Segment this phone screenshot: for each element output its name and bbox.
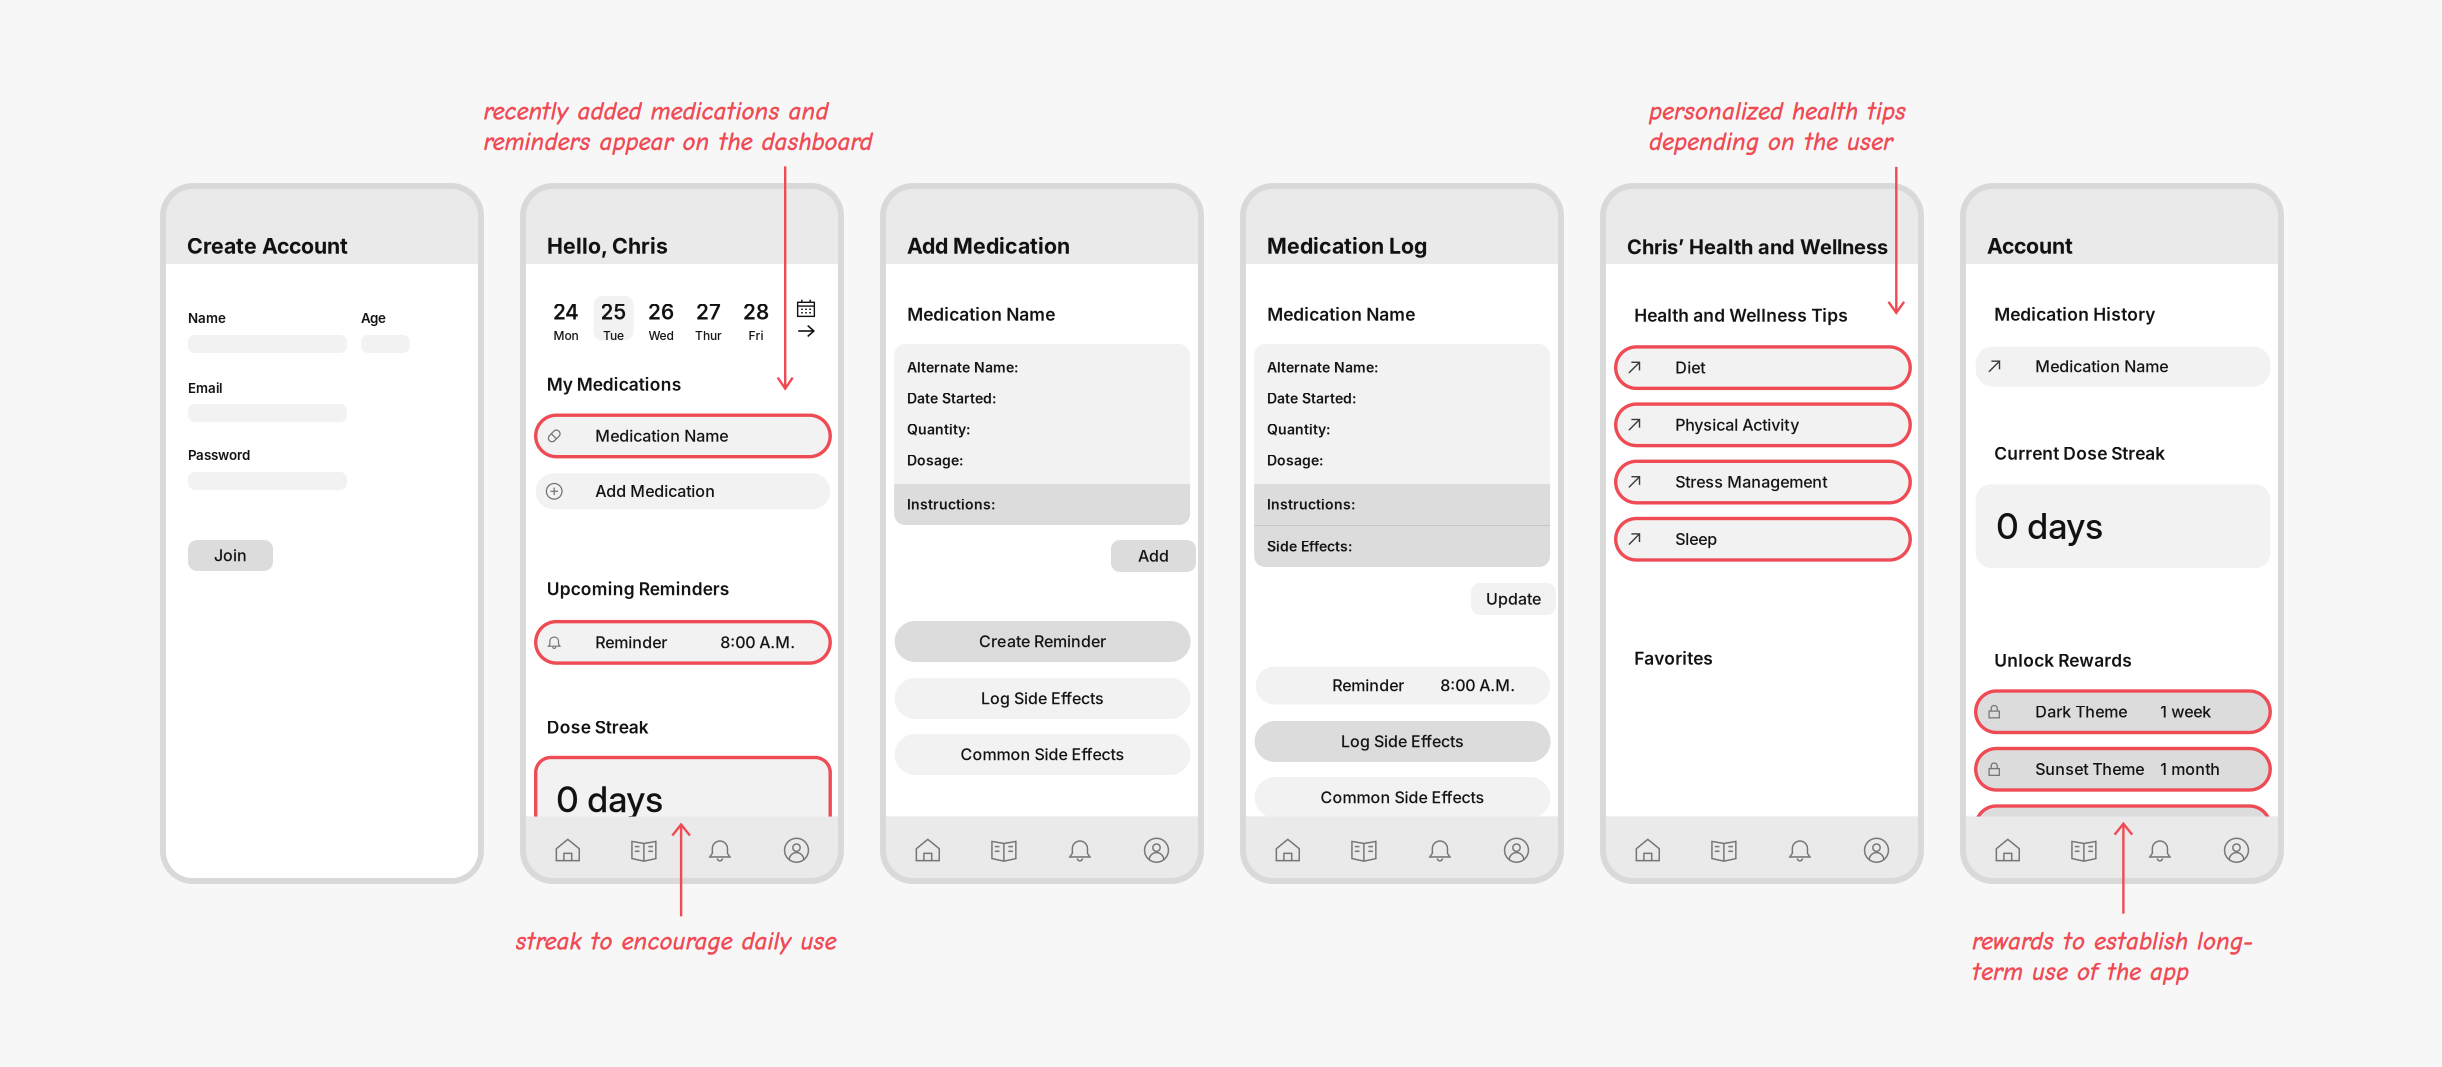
staticText: 25 [600,299,626,324]
staticText: Side Effects: [1267,538,1352,555]
staticText: Add Medication [595,482,715,501]
button[interactable]: Home [1986,816,2030,878]
staticText: My Medications [547,374,682,395]
staticText: Medication Name [1267,304,1415,325]
button[interactable]: Join [188,540,273,571]
button[interactable] [1974,804,2272,849]
button[interactable]: Profile [2214,816,2258,878]
staticText: Password [188,447,250,463]
staticText: Instructions: [907,496,995,513]
staticText: Mon [553,328,578,343]
staticText: Sleep [1675,530,1717,549]
button[interactable]: Log Side Effects [895,678,1191,719]
button[interactable]: 26 [641,296,681,340]
staticText: Name [188,310,226,326]
button[interactable]: Dark Theme [1974,689,2272,734]
staticText: Account [1987,233,2073,259]
button[interactable]: 28 [736,296,776,340]
button[interactable]: Library [1702,816,1746,878]
button[interactable]: Open calendar [794,298,818,340]
staticText: Age [361,310,386,326]
staticText: Alternate Name: [1267,359,1378,376]
staticText: Create Account [187,233,348,259]
staticText: Log Side Effects [981,689,1104,708]
staticText: Reminder [595,633,667,652]
button[interactable]: Physical Activity [1614,403,1912,447]
button[interactable]: Home [1626,816,1670,878]
staticText: Medication Name [595,426,728,446]
button[interactable]: Update [1471,583,1556,615]
staticText: Email [188,380,222,396]
staticText: Sunset Theme [2035,760,2144,779]
staticText: Common Side Effects [1321,788,1485,807]
button[interactable]: Library [622,816,666,878]
button[interactable]: Library [1342,816,1386,878]
staticText: Medication Name [907,304,1055,325]
staticText: Diet [1675,358,1705,377]
staticText: recently added medications and [483,97,828,126]
staticText: 24 [553,299,579,324]
button[interactable]: Reminders [698,816,742,878]
staticText: Medication Name [2035,357,2168,376]
button[interactable]: 27 [688,296,728,340]
staticText: Add Medication [907,233,1070,259]
button[interactable]: Library [2062,816,2106,878]
button[interactable]: Add [1111,540,1196,572]
staticText: Common Side Effects [961,745,1125,764]
staticText: Hello, Chris [547,233,668,259]
staticText: 0 days [1996,505,2103,548]
button[interactable]: Home [906,816,950,878]
button[interactable]: 24 [546,296,586,340]
button[interactable]: Common Side Effects [895,734,1191,775]
staticText: Stress Management [1675,472,1827,492]
staticText: Log Side Effects [1341,732,1464,751]
staticText: 27 [696,299,721,324]
button[interactable]: Reminders [1778,816,1822,878]
button[interactable]: Reminders [1058,816,1102,878]
staticText: 0 days [556,778,663,821]
button[interactable]: Sleep [1614,517,1912,561]
staticText: Health and Wellness Tips [1634,305,1848,326]
button[interactable]: 25 [593,296,633,340]
staticText: Add [1138,546,1169,566]
staticText: 28 [743,299,769,324]
staticText: 1 month [2160,760,2220,779]
button[interactable]: Reminder [534,620,832,665]
staticText: Upcoming Reminders [547,578,730,599]
button[interactable]: Profile [1134,816,1178,878]
button[interactable]: Common Side Effects [1255,777,1551,818]
button[interactable]: Log Side Effects [1255,721,1551,762]
button[interactable]: Library [982,816,1026,878]
button[interactable]: Stress Management [1614,460,1912,504]
button[interactable]: Reminders [2138,816,2182,878]
button[interactable]: Profile [1494,816,1538,878]
staticText: Medication Log [1267,233,1427,259]
button[interactable]: Home [546,816,590,878]
button[interactable]: Sunset Theme [1974,747,2272,791]
button[interactable]: Diet [1614,345,1912,390]
staticText: Dosage: [1267,452,1323,469]
staticText: Reminder [1332,676,1404,695]
staticText: Quantity: [907,421,970,438]
staticText: Alternate Name: [907,359,1018,376]
staticText: 26 [648,299,674,324]
staticText: Date Started: [1267,390,1356,407]
staticText: Update [1486,589,1541,609]
button[interactable]: Reminder [1254,665,1552,706]
staticText: 8:00 A.M. [1440,676,1515,695]
staticText: streak to encourage daily use [516,927,837,956]
button[interactable]: Medication Name [534,414,832,458]
button[interactable]: Profile [774,816,818,878]
staticText: term use of the app [1972,957,2189,986]
button[interactable]: Profile [1854,816,1898,878]
staticText: Instructions: [1267,496,1355,513]
staticText: Fri [748,328,763,343]
staticText: Date Started: [907,390,996,407]
button[interactable]: Create Reminder [895,621,1191,662]
button[interactable]: Add Medication [534,472,832,511]
button[interactable]: Home [1266,816,1310,878]
staticText: Current Dose Streak [1994,443,2165,464]
button[interactable]: Reminders [1418,816,1462,878]
staticText: Tue [603,328,624,343]
button[interactable]: Medication Name [1974,345,2272,388]
